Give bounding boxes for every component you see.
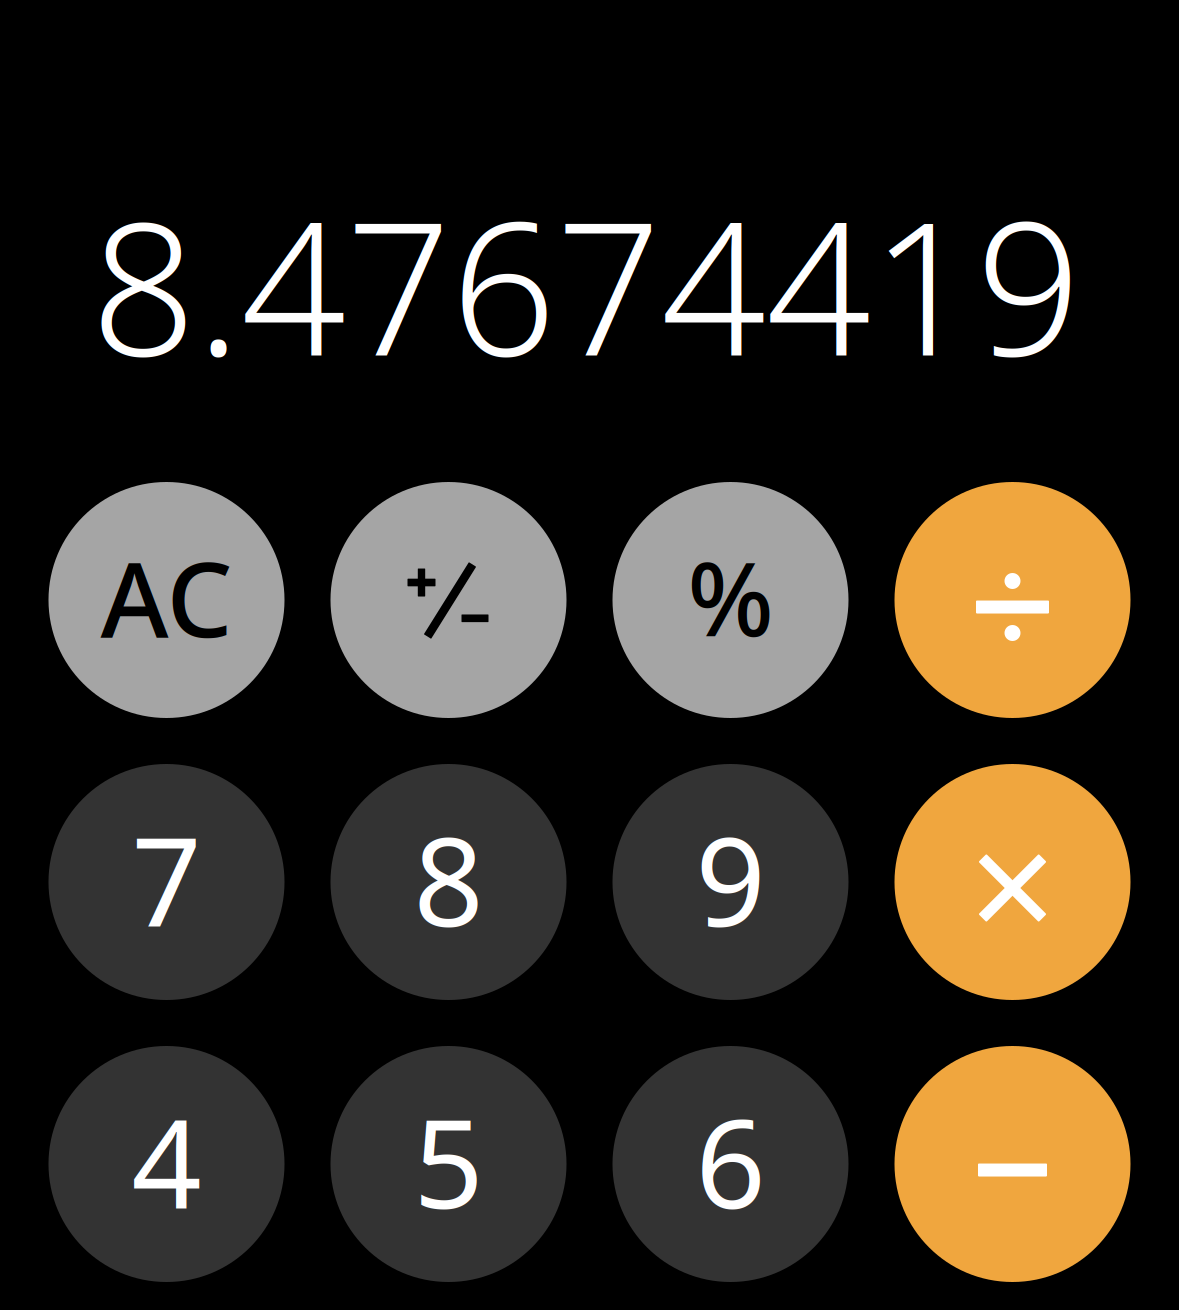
- button[interactable]: 8: [330, 764, 566, 1000]
- staticText: 9: [695, 798, 765, 960]
- button[interactable]: Divide: [894, 482, 1130, 718]
- button[interactable]: Subtract: [894, 1046, 1130, 1282]
- staticText: %: [687, 530, 773, 664]
- button[interactable]: %: [612, 482, 848, 718]
- button[interactable]: 7: [48, 764, 284, 1000]
- button[interactable]: 4: [48, 1046, 284, 1282]
- button[interactable]: 6: [612, 1046, 848, 1282]
- staticText: 8: [413, 798, 483, 960]
- staticText: 8.47674419: [91, 162, 1081, 406]
- staticText: 5: [413, 1080, 483, 1242]
- staticText: 4: [131, 1080, 201, 1242]
- button[interactable]: 9: [612, 764, 848, 1000]
- staticText: AC: [100, 528, 232, 666]
- staticText: 7: [131, 798, 201, 960]
- button[interactable]: Plus Minus: [330, 482, 566, 718]
- button[interactable]: AC: [48, 482, 284, 718]
- button[interactable]: 5: [330, 1046, 566, 1282]
- button[interactable]: Multiply: [894, 764, 1130, 1000]
- staticText: 6: [695, 1080, 765, 1242]
